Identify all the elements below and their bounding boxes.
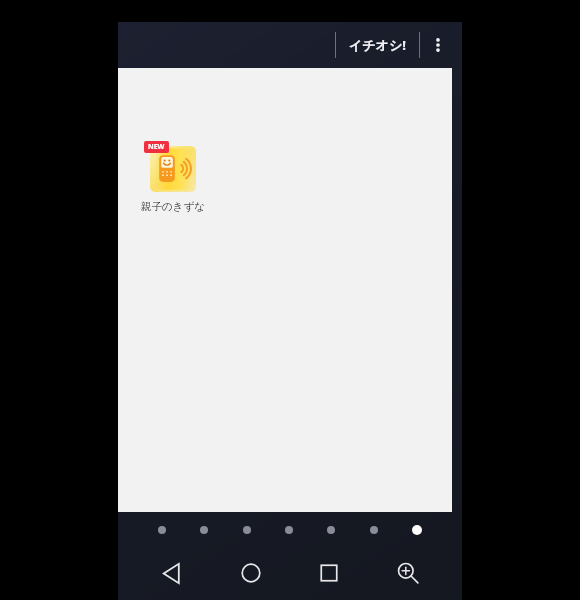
staticText: 親子のきずな	[141, 200, 205, 213]
button[interactable]: Recent apps	[305, 549, 353, 597]
button[interactable]: Home	[227, 549, 275, 597]
button[interactable]: イチオシ!	[336, 30, 419, 60]
button[interactable]: NEW	[132, 144, 214, 213]
staticText: NEW	[148, 142, 165, 152]
button[interactable]: Back	[148, 549, 196, 597]
button[interactable]: Zoom	[384, 549, 432, 597]
button[interactable]: More options	[420, 27, 456, 63]
staticText: イチオシ!	[349, 36, 406, 54]
